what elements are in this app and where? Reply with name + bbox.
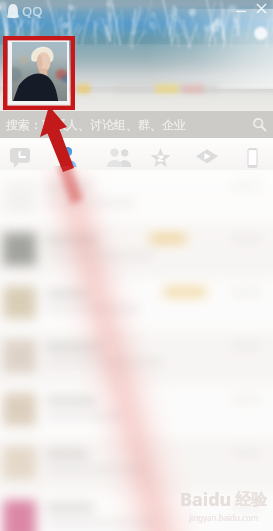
other: Profile photo — [12, 42, 67, 101]
button[interactable]: Discover — [190, 141, 224, 174]
button[interactable]: Search — [246, 111, 273, 138]
button[interactable]: Minimize — [231, 0, 251, 17]
button[interactable]: Profile photo — [3, 36, 75, 110]
button[interactable]: QQ — [5, 1, 44, 21]
button[interactable]: Recent chats — [4, 141, 36, 175]
button[interactable]: Favorites — [144, 141, 177, 175]
staticText: Baidu — [180, 487, 232, 512]
staticText: 搜索：联系人、讨论组、群、企业 — [6, 117, 186, 132]
staticText: jingyan.baidu.com — [189, 512, 259, 523]
staticText: 经验 — [235, 490, 267, 510]
staticText: QQ — [22, 2, 43, 20]
other: QQ — [6, 3, 20, 19]
button[interactable]: Device — [238, 141, 267, 175]
button[interactable]: Contacts — [52, 140, 84, 174]
button[interactable]: Groups — [100, 141, 138, 174]
button[interactable]: 搜索：联系人、讨论组、群、企业 — [0, 111, 273, 138]
button[interactable]: Close — [251, 0, 271, 17]
